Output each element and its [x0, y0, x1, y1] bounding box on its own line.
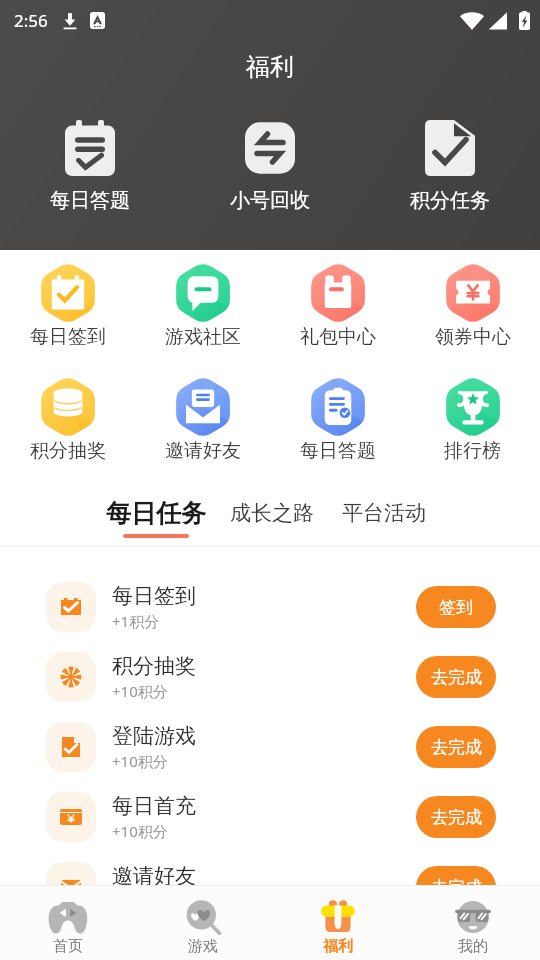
staticText: +1积分: [112, 611, 160, 631]
button[interactable]: 积分抽奖: [0, 642, 540, 712]
button[interactable]: 福利: [270, 891, 405, 956]
other: 每日答题: [65, 120, 115, 176]
staticText: 去完成: [431, 667, 482, 688]
button[interactable]: 去完成: [416, 796, 496, 838]
staticText: 每日签到: [30, 325, 106, 349]
staticText: 每日答题: [300, 439, 376, 463]
staticText: 去完成: [431, 737, 482, 758]
button[interactable]: 签到: [416, 586, 496, 628]
button[interactable]: 礼包中心: [270, 262, 405, 349]
other: 我的: [452, 900, 494, 934]
button[interactable]: 每日任务: [99, 494, 213, 542]
staticText: 礼包中心: [300, 325, 376, 349]
staticText: 登陆游戏: [112, 723, 196, 749]
button[interactable]: 每日签到: [0, 572, 540, 642]
staticText: 去完成: [431, 877, 482, 898]
staticText: 每日答题: [50, 188, 130, 213]
staticText: 每日首充: [112, 793, 196, 819]
button[interactable]: 每日签到: [0, 262, 135, 349]
button[interactable]: 登陆游戏: [0, 712, 540, 782]
staticText: 我的: [458, 937, 488, 956]
button[interactable]: 游戏社区: [135, 262, 270, 349]
other: 小号回收: [245, 120, 295, 176]
staticText: 小号回收: [230, 188, 310, 213]
staticText: +10积分: [112, 751, 168, 771]
staticText: 积分抽奖: [30, 439, 106, 463]
staticText: 福利: [323, 937, 353, 956]
staticText: 2:56: [14, 9, 48, 32]
other: 首页: [47, 900, 89, 934]
button[interactable]: 领券中心: [405, 262, 540, 349]
other: 积分任务: [425, 120, 475, 176]
staticText: 积分抽奖: [112, 653, 196, 679]
button[interactable]: 邀请好友: [0, 852, 540, 922]
button[interactable]: 去完成: [416, 726, 496, 768]
button[interactable]: 排行榜: [405, 376, 540, 463]
button[interactable]: 我的: [405, 891, 540, 956]
other: 游戏: [182, 900, 224, 934]
staticText: 邀请好友: [165, 439, 241, 463]
staticText: +10积分: [112, 821, 168, 841]
staticText: 去完成: [431, 807, 482, 828]
other: 福利: [317, 900, 359, 934]
staticText: 游戏: [188, 937, 218, 956]
button[interactable]: 邀请好友: [135, 376, 270, 463]
button[interactable]: 每日答题: [0, 118, 180, 215]
button[interactable]: 去完成: [416, 866, 496, 908]
button[interactable]: 游戏: [135, 891, 270, 956]
button[interactable]: 每日答题: [270, 376, 405, 463]
staticText: 成长之路: [230, 500, 314, 526]
staticText: 排行榜: [444, 439, 501, 463]
button[interactable]: 小号回收: [180, 118, 360, 215]
staticText: 领券中心: [435, 325, 511, 349]
staticText: +10积分: [112, 681, 168, 701]
staticText: 积分任务: [410, 188, 490, 213]
staticText: 每日签到: [112, 583, 196, 609]
staticText: 游戏社区: [165, 325, 241, 349]
button[interactable]: 平台活动: [335, 496, 433, 539]
button[interactable]: 积分任务: [360, 118, 540, 215]
button[interactable]: 积分抽奖: [0, 376, 135, 463]
staticText: 邀请好友: [112, 863, 196, 889]
button[interactable]: 每日首充: [0, 782, 540, 852]
staticText: 签到: [439, 597, 473, 618]
button[interactable]: 成长之路: [223, 496, 321, 539]
staticText: 首页: [53, 937, 83, 956]
staticText: 福利: [246, 52, 294, 82]
button[interactable]: 首页: [0, 891, 135, 956]
button[interactable]: 去完成: [416, 656, 496, 698]
staticText: 平台活动: [342, 500, 426, 526]
staticText: 每日任务: [106, 498, 206, 529]
